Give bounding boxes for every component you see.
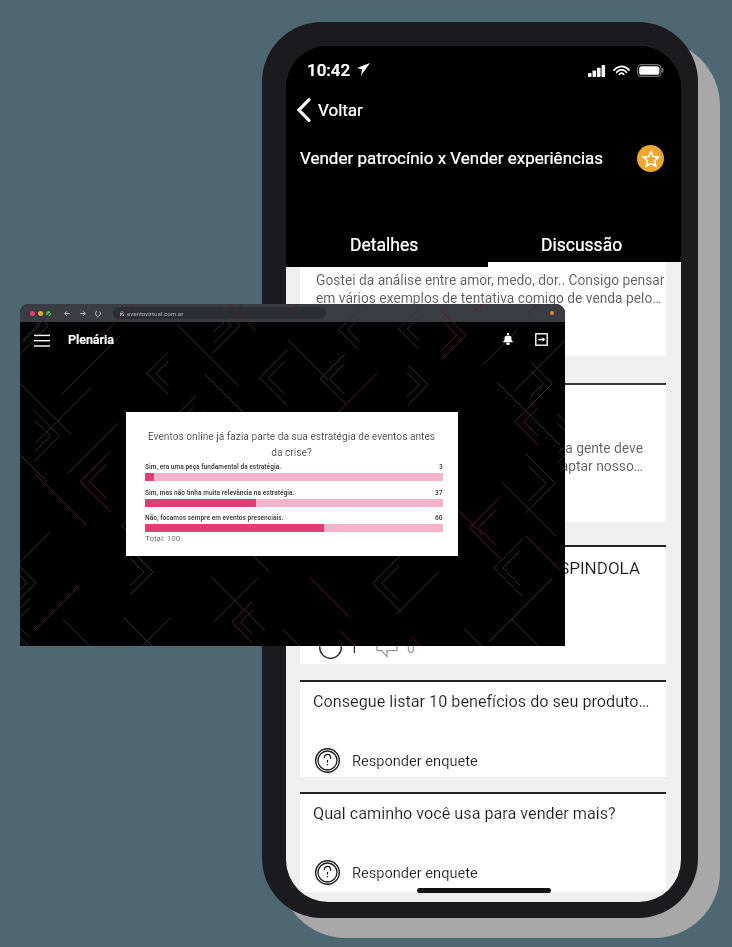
staticText: Vender patrocínio x Vender experiências: [300, 148, 631, 168]
staticText: 3: [439, 463, 443, 471]
staticText: Discussão: [541, 235, 623, 256]
staticText: 0: [407, 640, 415, 656]
button[interactable]: Discussão: [483, 229, 681, 262]
button[interactable]: JULIANA MARTINS: [300, 252, 666, 356]
button[interactable]: Favoritar: [637, 145, 664, 172]
staticText: Total: 100: [145, 534, 181, 543]
button[interactable]: Consegue listar 10 benefícios do seu pro…: [300, 680, 666, 777]
staticText: Responder enquete: [352, 864, 478, 881]
staticText: Qual caminho você usa para vender mais?: [313, 804, 616, 823]
staticText: eventovirtual.com.ar: [127, 310, 184, 317]
staticText: 37: [435, 489, 443, 497]
button[interactable]: Achei muito interessante isso que a gent…: [300, 383, 666, 522]
staticText: Não, focamos sempre em eventos presencia…: [145, 514, 284, 522]
staticText: Eventos online já fazia parte da sua est…: [142, 431, 441, 458]
button[interactable]: Menu: [34, 334, 50, 346]
button[interactable]: Gostei da análise entre amor, medo, dor.…: [300, 266, 666, 356]
staticText: Consegue listar 10 benefícios do seu pro…: [313, 692, 650, 711]
button[interactable]: MARCELO SPINDOLA: [300, 545, 666, 664]
staticText: Sim, mas não tinha muita relevância na e…: [145, 489, 295, 497]
staticText: Plenária: [68, 332, 114, 347]
button[interactable]: Notificações: [502, 333, 514, 346]
button[interactable]: Sair: [535, 333, 548, 346]
staticText: Voltar: [318, 100, 363, 120]
button[interactable]: Voltar: [286, 88, 681, 132]
staticText: JULIANA MARTINS: [316, 254, 428, 269]
staticText: 60: [435, 514, 443, 522]
staticText: Responder enquete: [352, 752, 478, 769]
button[interactable]: Qual caminho você usa para vender mais?: [300, 792, 666, 892]
staticText: Detalhes: [350, 235, 419, 256]
staticText: Sim, era uma peça fundamental da estraté…: [145, 463, 282, 471]
staticText: Gostei da análise entre amor, medo, dor.…: [316, 272, 665, 307]
staticText: Achei muito interessante isso que a gent…: [316, 440, 643, 475]
staticText: 10:42: [307, 60, 351, 80]
staticText: MARCELO SPINDOLA: [316, 558, 640, 578]
button[interactable]: Detalhes: [286, 229, 483, 262]
staticText: 1: [350, 640, 358, 656]
button[interactable]: Responder enquete: [315, 748, 478, 773]
button[interactable]: Responder enquete: [315, 860, 478, 885]
